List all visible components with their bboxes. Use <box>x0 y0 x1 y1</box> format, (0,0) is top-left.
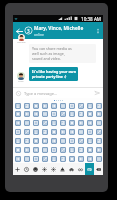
button[interactable]: Emoji category <box>76 163 85 175</box>
button[interactable]: Emoji <box>76 110 85 118</box>
button[interactable]: Emoji <box>22 102 31 110</box>
button[interactable]: Emoji <box>85 154 94 163</box>
button[interactable]: Emoji <box>85 102 94 110</box>
staticText: Michelle <box>17 41 26 44</box>
button[interactable]: Emoji <box>76 136 85 145</box>
button[interactable]: Emoji category <box>40 163 49 175</box>
button[interactable]: Emoji <box>13 127 22 136</box>
button[interactable]: Emoji <box>49 145 58 154</box>
button[interactable]: Emoji <box>58 102 67 110</box>
button[interactable]: Emoji <box>94 145 103 154</box>
button[interactable]: Emoji <box>76 127 85 136</box>
button[interactable]: Emoji category <box>58 163 67 175</box>
button[interactable]: Emoji <box>40 154 49 163</box>
button[interactable]: Emoji category <box>49 163 58 175</box>
button[interactable]: Emoji <box>31 136 40 145</box>
button[interactable]: Emoji <box>58 110 67 118</box>
button[interactable]: Emoji <box>49 127 58 136</box>
button[interactable]: Emoji <box>58 154 67 163</box>
button[interactable]: Emoji <box>40 110 49 118</box>
button[interactable]: Emoji <box>67 145 76 154</box>
button[interactable]: Emoji <box>76 118 85 127</box>
button[interactable]: Emoji <box>13 154 22 163</box>
button[interactable]: Back <box>14 26 24 36</box>
button[interactable]: Emoji <box>76 145 85 154</box>
button[interactable]: Emoji <box>58 127 67 136</box>
staticText: online <box>34 32 44 37</box>
staticText: You can share media as well such as imag… <box>32 46 74 61</box>
button[interactable]: Emoji <box>31 118 40 127</box>
button[interactable]: Emoji <box>76 154 85 163</box>
button[interactable]: Emoji <box>49 154 58 163</box>
button[interactable]: Emoji <box>22 136 31 145</box>
button[interactable]: Emoji <box>58 145 67 154</box>
button[interactable]: Emoji <box>31 102 40 110</box>
staticText: Vince <box>18 80 24 83</box>
button[interactable]: Emoji <box>49 118 58 127</box>
button[interactable]: Emoji <box>85 110 94 118</box>
staticText: 3 <box>27 28 30 34</box>
button[interactable]: Emoji <box>40 145 49 154</box>
staticText: 10:38 AM <box>81 16 102 22</box>
button[interactable]: Emoji <box>49 102 58 110</box>
button[interactable]: Emoji <box>22 110 31 118</box>
button[interactable]: Emoji category <box>85 163 94 175</box>
button[interactable]: Emoji <box>40 118 49 127</box>
button[interactable]: Emoji <box>94 154 103 163</box>
button[interactable]: Emoji <box>76 102 85 110</box>
button[interactable]: Emoji <box>58 118 67 127</box>
button[interactable]: Emoji <box>67 136 76 145</box>
button[interactable]: Emoji category <box>22 163 31 175</box>
button[interactable]: Emoji <box>67 154 76 163</box>
button[interactable]: Emoji <box>94 118 103 127</box>
button[interactable]: Emoji category <box>94 163 103 175</box>
button[interactable]: Emoji <box>49 136 58 145</box>
staticText: Mary, Vince, Michelle <box>34 25 84 32</box>
staticText: Type a message... <box>24 91 58 96</box>
button[interactable]: Emoji <box>94 127 103 136</box>
button[interactable]: Emoji <box>40 136 49 145</box>
button[interactable]: Emoji <box>22 118 31 127</box>
button[interactable]: Emoji <box>94 102 103 110</box>
button[interactable]: Emoji <box>31 127 40 136</box>
button[interactable]: Emoji <box>31 154 40 163</box>
button[interactable]: Emoji <box>13 118 22 127</box>
staticText: It's like having your own private party … <box>32 69 76 79</box>
button[interactable]: Attach <box>15 90 22 97</box>
button[interactable]: Emoji <box>40 127 49 136</box>
button[interactable]: Emoji category <box>13 163 22 175</box>
button[interactable]: Emoji <box>85 145 94 154</box>
button[interactable]: Emoji <box>40 102 49 110</box>
button[interactable]: Emoji <box>22 154 31 163</box>
button[interactable]: Emoji category <box>31 163 40 175</box>
button[interactable]: Emoji <box>67 118 76 127</box>
button[interactable]: Emoji <box>13 136 22 145</box>
button[interactable]: Emoji <box>22 145 31 154</box>
button[interactable]: Emoji <box>85 127 94 136</box>
button[interactable]: Emoji <box>49 110 58 118</box>
button[interactable]: Emoji <box>31 110 40 118</box>
button[interactable]: Emoji <box>22 127 31 136</box>
button[interactable]: Emoji <box>13 145 22 154</box>
button[interactable]: Emoji <box>67 127 76 136</box>
button[interactable]: Emoji category <box>67 163 76 175</box>
button[interactable]: More options <box>93 26 103 36</box>
button[interactable]: Emoji <box>58 136 67 145</box>
button[interactable]: Emoji <box>13 102 22 110</box>
button[interactable]: Emoji <box>94 136 103 145</box>
button[interactable]: Send <box>93 89 101 97</box>
button[interactable]: Emoji <box>85 118 94 127</box>
button[interactable]: Emoji <box>13 110 22 118</box>
button[interactable]: Emoji <box>31 145 40 154</box>
button[interactable]: Emoji <box>85 136 94 145</box>
button[interactable]: Emoji <box>67 102 76 110</box>
button[interactable]: Emoji <box>94 110 103 118</box>
button[interactable]: Emoji <box>67 110 76 118</box>
